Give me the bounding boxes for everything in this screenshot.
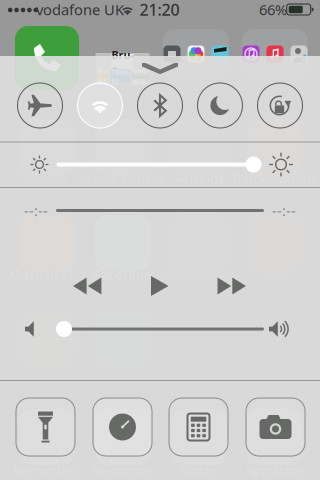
staticText: FaceTime	[94, 265, 152, 283]
staticText: Phone	[27, 169, 67, 187]
button[interactable]: Camera	[246, 398, 305, 456]
staticText: 21:20	[139, 0, 179, 20]
staticText: 66%	[259, 0, 287, 19]
button[interactable]: Rotation Lock	[252, 79, 308, 131]
button[interactable]: Wi-Fi	[72, 79, 128, 131]
button[interactable]: Timer	[93, 398, 152, 456]
staticText: RattleNations	[233, 169, 316, 187]
button[interactable]: Volume	[56, 320, 264, 338]
staticText: Photography	[159, 265, 239, 283]
staticText: --:--	[24, 201, 48, 220]
button[interactable]: Bluetooth	[132, 79, 188, 131]
button[interactable]: Close Control Center	[134, 55, 186, 83]
button[interactable]: Fast Forward	[205, 265, 258, 306]
staticText: --:--	[272, 201, 296, 220]
staticText: Clash of Cl…	[10, 265, 83, 283]
staticText: ART	[97, 66, 107, 87]
button[interactable]: Brightness	[56, 155, 263, 173]
button[interactable]: Airplane Mode	[12, 79, 68, 131]
staticText: vodafone UK	[36, 0, 124, 19]
button[interactable]: Do Not Disturb	[192, 79, 248, 131]
button[interactable]: Flashlight	[16, 398, 75, 456]
button[interactable]: Play	[139, 264, 181, 308]
staticText: Bruo	[111, 48, 133, 76]
button[interactable]: Calculator	[169, 398, 228, 456]
staticText: TRAVEL	[111, 68, 129, 85]
button[interactable]: Rewind	[61, 265, 114, 306]
staticText: SPORTS	[133, 68, 148, 85]
